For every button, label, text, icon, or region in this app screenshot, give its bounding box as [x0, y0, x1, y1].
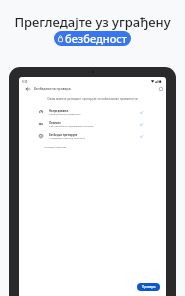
- staticText: Нађ пронађена недозвољена лозинка: [49, 124, 94, 127]
- staticText: Трговина налогом: [44, 145, 67, 148]
- staticText: безбедност: [65, 31, 128, 46]
- button[interactable]: Безбедне препоруке: [19, 131, 166, 142]
- button[interactable]: безбедност: [54, 31, 131, 46]
- staticText: Google Штити је додељено: [49, 112, 81, 115]
- button[interactable]: Help: [156, 84, 165, 93]
- staticText: Прегледајте уз уграђену: [14, 13, 171, 31]
- staticText: 9:30: [22, 80, 28, 84]
- button[interactable]: Back: [23, 84, 32, 93]
- staticText: Овим можете да видите препоруке за побољ…: [19, 97, 166, 101]
- staticText: Безбедносна провера: [34, 86, 71, 91]
- staticText: Безбедне препоруке: [49, 133, 78, 137]
- button[interactable]: Напредовање: [19, 107, 166, 118]
- staticText: Провери: [142, 285, 156, 289]
- staticText: Стандардна заштита укључена: [49, 136, 85, 139]
- staticText: Напредовање: [49, 109, 69, 113]
- button[interactable]: Провери: [137, 283, 160, 291]
- staticText: Лозинке: [49, 121, 61, 125]
- button[interactable]: Лозинке: [19, 119, 166, 130]
